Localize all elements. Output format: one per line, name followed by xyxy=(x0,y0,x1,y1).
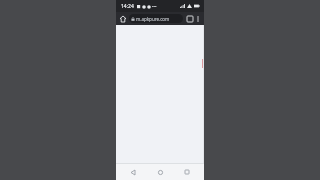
button[interactable]: m.apkpure.com xyxy=(129,14,183,23)
staticText: m.apkpure.com xyxy=(136,16,170,22)
button[interactable]: Recent apps xyxy=(177,164,197,180)
button[interactable]: Home xyxy=(150,164,170,180)
staticText: 14:24 xyxy=(121,3,134,10)
button[interactable]: Home xyxy=(118,14,128,24)
button[interactable]: More options xyxy=(194,15,202,23)
button[interactable]: Back xyxy=(123,164,143,180)
staticText: ••• xyxy=(152,4,157,9)
button[interactable]: Tabs xyxy=(185,14,194,23)
